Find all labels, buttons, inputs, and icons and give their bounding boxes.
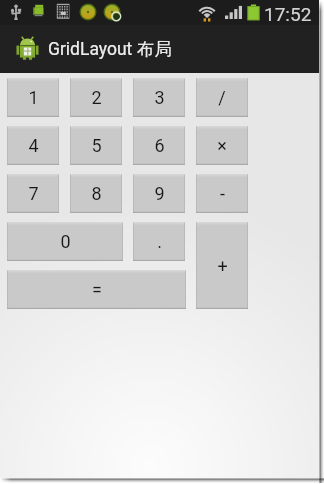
button[interactable]: + [196, 222, 248, 309]
button[interactable]: 1 [7, 78, 59, 117]
staticText: + [217, 255, 228, 276]
staticText: 17:52 [264, 3, 312, 25]
button[interactable]: 7 [7, 174, 59, 213]
staticText: 4 [28, 135, 39, 156]
staticText: 7 [28, 183, 39, 204]
staticText: = [92, 279, 102, 300]
button[interactable]: 8 [70, 174, 122, 213]
staticText: 6 [154, 135, 165, 156]
staticText: - [220, 183, 225, 204]
button[interactable]: × [196, 126, 248, 165]
staticText: 0 [60, 231, 71, 252]
staticText: 3 [154, 87, 165, 108]
button[interactable]: . [133, 222, 185, 261]
staticText: . [157, 231, 162, 252]
button[interactable]: 6 [133, 126, 185, 165]
staticText: 2 [91, 87, 102, 108]
staticText: 8 [91, 183, 102, 204]
button[interactable]: 0 [7, 222, 123, 261]
button[interactable]: - [196, 174, 248, 213]
staticText: 9 [154, 183, 165, 204]
staticText: GridLayout 布局 [48, 38, 172, 60]
button[interactable]: 5 [70, 126, 122, 165]
button[interactable]: 2 [70, 78, 122, 117]
button[interactable]: = [7, 270, 186, 309]
button[interactable]: 3 [133, 78, 185, 117]
staticText: / [218, 87, 226, 108]
staticText: × [217, 135, 227, 156]
staticText: 1 [28, 87, 39, 108]
button[interactable]: 4 [7, 126, 59, 165]
button[interactable]: / [196, 78, 248, 117]
button[interactable]: 9 [133, 174, 185, 213]
staticText: 5 [91, 135, 102, 156]
